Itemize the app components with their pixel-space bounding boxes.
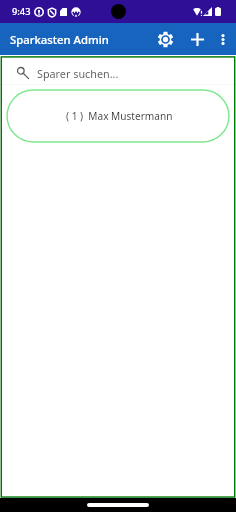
button[interactable]: Sparer suchen... xyxy=(0,55,236,84)
staticText: 9:43 xyxy=(12,5,31,18)
staticText: ( 1 ) Max Mustermann xyxy=(66,109,173,123)
staticText: Sparer suchen... xyxy=(37,66,119,81)
button[interactable]: ( 1 ) Max Mustermann xyxy=(6,89,230,143)
button[interactable]: More options xyxy=(210,26,236,52)
button[interactable]: Settings xyxy=(150,24,180,54)
staticText: Sparkasten Admin xyxy=(10,32,109,47)
button[interactable]: Add saver xyxy=(180,24,210,54)
